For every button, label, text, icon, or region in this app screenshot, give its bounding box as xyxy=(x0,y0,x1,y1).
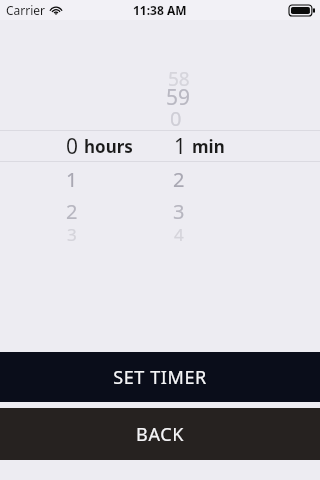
staticText: BACK xyxy=(136,422,184,447)
staticText: 0 xyxy=(66,132,79,161)
staticText: hours xyxy=(84,135,133,158)
staticText: 59 xyxy=(166,83,191,112)
staticText: 11:38 AM xyxy=(133,2,187,18)
staticText: 3 xyxy=(67,223,77,246)
staticText: SET TIMER xyxy=(113,365,207,390)
button[interactable]: SET TIMER xyxy=(0,352,320,402)
staticText: 2 xyxy=(66,198,78,225)
staticText: min xyxy=(192,135,225,158)
staticText: 2 xyxy=(173,166,185,193)
staticText: 1 xyxy=(66,166,78,193)
button[interactable]: BACK xyxy=(0,408,320,460)
button[interactable]: 1 xyxy=(160,130,320,162)
staticText: 3 xyxy=(173,198,185,225)
staticText: Carrier xyxy=(6,2,46,18)
staticText: 0 xyxy=(170,105,182,132)
staticText: 1 xyxy=(174,132,187,161)
staticText: 4 xyxy=(174,223,184,246)
button[interactable]: 0 xyxy=(0,130,160,162)
staticText: 58 xyxy=(168,66,190,92)
